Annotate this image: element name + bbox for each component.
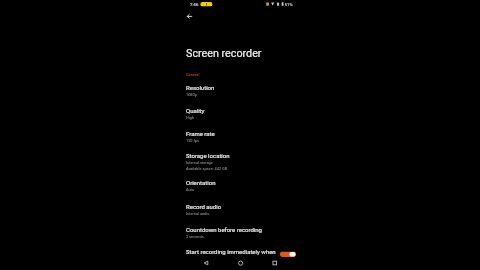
staticText: 7:56 — [190, 2, 198, 7]
staticText: Resolution — [186, 84, 214, 91]
staticText: Orientation — [186, 179, 215, 186]
staticText: 120 fps — [186, 138, 199, 143]
staticText: Internal audio — [186, 211, 209, 215]
staticText: Internal storage — [186, 160, 213, 165]
staticText: 3 seconds — [186, 234, 204, 239]
staticText: Quality — [186, 107, 204, 114]
button[interactable]: Back — [183, 10, 195, 22]
button[interactable]: Back — [200, 257, 211, 268]
staticText: Auto — [186, 187, 194, 191]
staticText: Frame rate — [186, 130, 215, 137]
button[interactable]: Orientation — [186, 179, 296, 191]
staticText: General — [186, 72, 199, 77]
staticText: High — [186, 115, 194, 120]
button[interactable]: Storage location — [186, 152, 296, 171]
staticText: 51% — [285, 2, 293, 7]
button[interactable]: Recent apps — [269, 257, 280, 268]
button[interactable]: Home — [235, 257, 246, 268]
staticText: Record audio — [186, 203, 221, 210]
button[interactable]: Countdown before recording — [186, 226, 296, 239]
button[interactable]: Frame rate — [186, 130, 296, 143]
button[interactable]: Resolution — [186, 84, 296, 97]
staticText: Start recording immediately when — [186, 248, 280, 255]
staticText: Countdown before recording — [186, 226, 262, 233]
staticText: Available space: 442 GB — [186, 167, 227, 171]
staticText: 1080p — [186, 92, 197, 97]
staticText: Storage location — [186, 152, 230, 159]
button[interactable]: Quality — [186, 107, 296, 120]
button[interactable]: Start recording immediately when — [186, 248, 296, 255]
button[interactable]: Record audio — [186, 203, 296, 215]
staticText: Screen recorder — [186, 46, 262, 59]
